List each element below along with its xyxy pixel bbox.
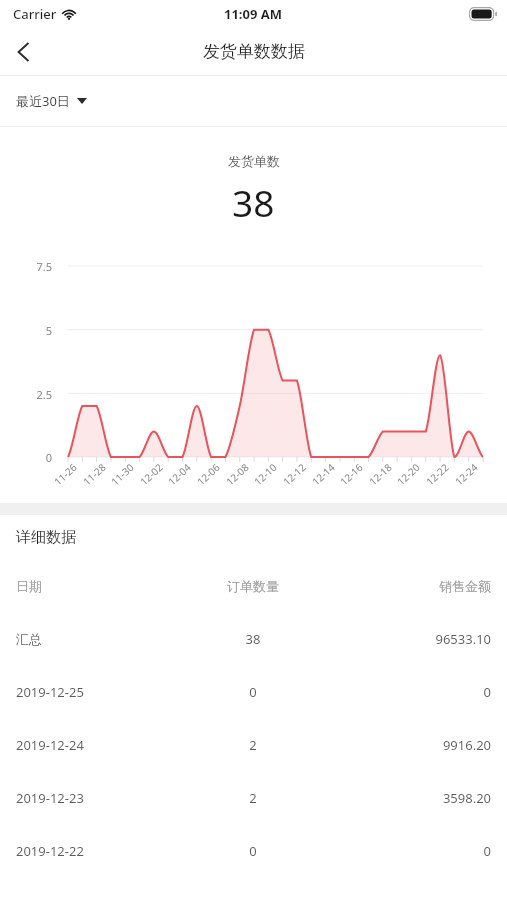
staticText: 2 <box>181 789 325 807</box>
staticText: 11-26 <box>51 460 80 488</box>
staticText: 2 <box>181 736 325 754</box>
button[interactable]: 最近30日 <box>0 76 507 126</box>
button[interactable]: 2019-12-24 <box>0 718 507 771</box>
staticText: 日期 <box>16 578 42 594</box>
staticText: 0 <box>0 450 52 465</box>
staticText: 汇总 <box>16 631 42 647</box>
staticText: 11-28 <box>80 460 109 488</box>
staticText: 11-30 <box>108 460 137 488</box>
staticText: 发货单数 <box>228 153 280 169</box>
staticText: 2019-12-22 <box>16 842 84 860</box>
staticText: 2019-12-23 <box>16 789 84 807</box>
staticText: 12-14 <box>309 460 338 488</box>
button[interactable]: 2019-12-25 <box>0 665 507 718</box>
staticText: 12-22 <box>423 460 452 488</box>
button[interactable]: 2019-12-23 <box>0 771 507 824</box>
staticText: 最近30日 <box>16 92 70 110</box>
staticText: 12-16 <box>337 460 366 488</box>
staticText: 发货单数数据 <box>203 41 305 62</box>
staticText: 7.5 <box>0 259 52 274</box>
staticText: 12-08 <box>223 460 252 488</box>
staticText: 9916.20 <box>325 736 491 754</box>
staticText: 12-02 <box>137 460 166 488</box>
button[interactable]: Back <box>0 28 46 75</box>
staticText: 2019-12-25 <box>16 683 84 701</box>
staticText: 12-12 <box>280 460 309 488</box>
staticText: 12-24 <box>452 460 481 488</box>
staticText: 0 <box>325 683 491 701</box>
staticText: 0 <box>181 683 325 701</box>
staticText: 12-10 <box>251 460 280 488</box>
staticText: 38 <box>181 630 325 648</box>
staticText: 12-06 <box>194 460 223 488</box>
staticText: 38 <box>232 177 275 227</box>
button[interactable]: 汇总 <box>0 612 507 665</box>
staticText: 订单数量 <box>181 578 325 594</box>
staticText: 12-18 <box>366 460 395 488</box>
staticText: 5 <box>0 323 52 338</box>
staticText: 0 <box>325 842 491 860</box>
button[interactable]: 2019-12-22 <box>0 824 507 877</box>
staticText: 详细数据 <box>16 528 76 547</box>
staticText: Carrier <box>13 5 57 23</box>
staticText: 12-04 <box>165 460 194 488</box>
staticText: 2.5 <box>0 387 52 402</box>
staticText: 11:09 AM <box>224 5 283 23</box>
staticText: 0 <box>181 842 325 860</box>
staticText: 96533.10 <box>325 630 491 648</box>
staticText: 2019-12-24 <box>16 736 84 754</box>
button[interactable]: 日期 <box>0 559 507 612</box>
staticText: 销售金额 <box>325 578 491 594</box>
staticText: 3598.20 <box>325 789 491 807</box>
staticText: 12-20 <box>394 460 423 488</box>
